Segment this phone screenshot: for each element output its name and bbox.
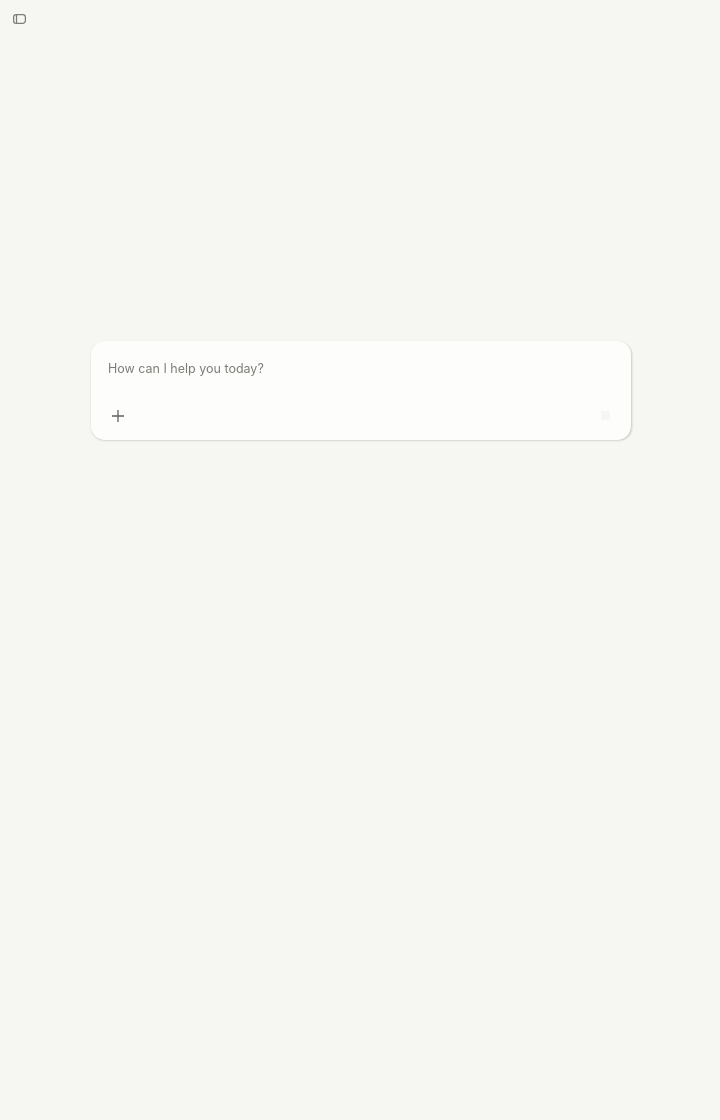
staticText: How can I help you today? <box>108 361 264 376</box>
button[interactable]: Toggle sidebar <box>6 6 32 32</box>
button[interactable]: How can I help you today? <box>91 341 631 396</box>
button[interactable]: Add attachment <box>104 402 131 429</box>
